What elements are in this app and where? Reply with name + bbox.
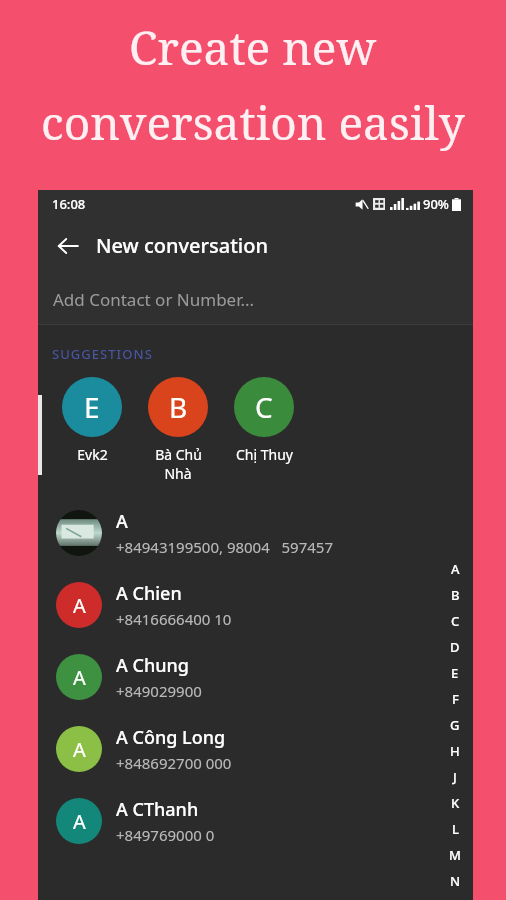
button[interactable]: A <box>38 713 473 785</box>
staticText: A <box>116 509 128 534</box>
staticText: A CThanh <box>116 797 199 822</box>
staticText: SUGGESTIONS <box>52 345 153 363</box>
button[interactable]: Alphabet index <box>443 560 467 900</box>
staticText: +849029900 <box>116 681 202 701</box>
staticText: A Chung <box>116 653 189 678</box>
staticText: 90% <box>423 195 449 213</box>
button[interactable]: Add Contact or Number... <box>38 274 473 324</box>
staticText: Evk2 <box>77 445 108 464</box>
button[interactable]: A <box>38 641 473 713</box>
staticText: New conversation <box>96 232 268 259</box>
staticText: A Công Long <box>116 725 226 750</box>
staticText: N <box>450 872 461 890</box>
staticText: L <box>452 820 459 838</box>
staticText: G <box>450 716 460 734</box>
staticText: D <box>450 638 460 656</box>
staticText: Create new <box>129 16 377 79</box>
button[interactable]: A <box>38 569 473 641</box>
staticText: 16:08 <box>52 195 86 213</box>
staticText: C <box>451 612 460 630</box>
staticText: A <box>73 808 86 835</box>
staticText: F <box>452 690 459 708</box>
staticText: C <box>255 388 273 426</box>
staticText: E <box>451 664 459 682</box>
staticText: Bà Chủ <box>155 445 202 464</box>
staticText: Nhà <box>164 464 192 483</box>
staticText: B <box>451 586 460 604</box>
staticText: A <box>73 736 86 763</box>
staticText: E <box>84 388 100 426</box>
staticText: J <box>453 768 457 786</box>
button[interactable]: E <box>49 377 135 464</box>
staticText: H <box>450 742 460 760</box>
button[interactable]: C <box>221 377 307 464</box>
button[interactable]: B <box>135 377 221 483</box>
staticText: A Chien <box>116 581 182 606</box>
staticText: +848692700 000 <box>116 753 232 773</box>
staticText: Add Contact or Number... <box>53 288 255 311</box>
button[interactable]: A <box>38 785 473 857</box>
staticText: K <box>451 794 460 812</box>
staticText: A <box>73 664 86 691</box>
staticText: +8416666400 10 <box>116 609 232 629</box>
staticText: Chị Thuy <box>236 445 293 464</box>
button[interactable]: Back <box>46 224 90 268</box>
button[interactable]: A <box>38 497 473 569</box>
staticText: A <box>451 560 460 578</box>
staticText: M <box>449 846 461 864</box>
staticText: B <box>169 388 188 426</box>
staticText: +849769000 0 <box>116 825 215 845</box>
staticText: +84943199500, 98004 597457 <box>116 537 333 557</box>
staticText: A <box>73 592 86 619</box>
staticText: conversation easily <box>41 91 465 154</box>
